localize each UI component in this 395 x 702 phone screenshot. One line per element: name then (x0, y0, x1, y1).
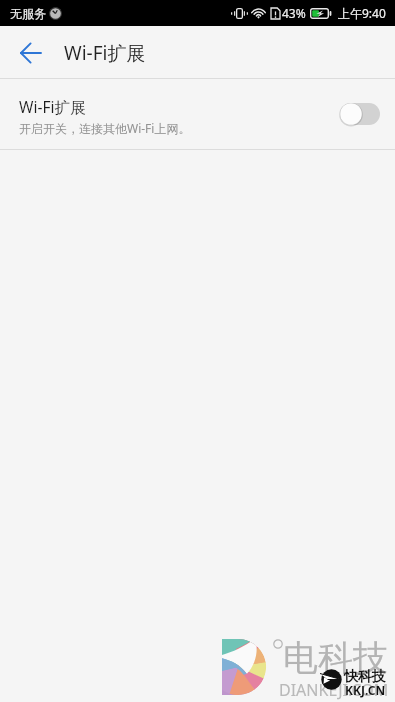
staticText: 上午9:40 (338, 5, 386, 21)
staticText: 快科技 (344, 668, 386, 686)
button[interactable]: Wi-Fi extension switch, off (340, 102, 380, 126)
staticText: 无服务 (10, 6, 46, 21)
staticText: DIANKEJI.COM (279, 679, 389, 701)
staticText: KKJ.CN (345, 682, 386, 698)
staticText: 43% (282, 5, 306, 21)
staticText: 开启开关，连接其他Wi-Fi上网。 (19, 120, 191, 136)
staticText: 电科技 (283, 636, 388, 680)
button[interactable]: Back (0, 26, 62, 78)
button[interactable]: Wi-Fi扩展 (0, 79, 395, 149)
staticText: Wi-Fi扩展 (19, 96, 86, 117)
staticText: Wi-Fi扩展 (64, 40, 146, 66)
